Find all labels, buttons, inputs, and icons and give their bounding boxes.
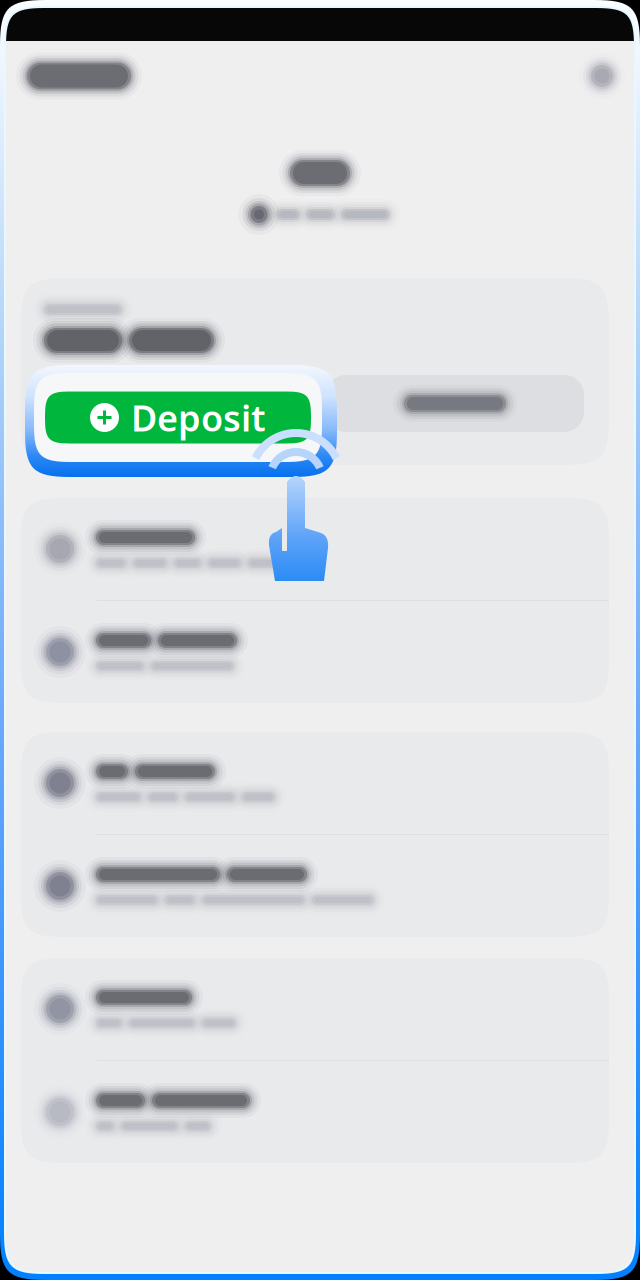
button[interactable]: Bonuses <box>21 498 609 600</box>
button[interactable]: Settings <box>21 958 609 1060</box>
staticText: Deposit <box>131 394 266 441</box>
button[interactable]: Bet history <box>21 732 609 834</box>
button[interactable]: Transaction history <box>21 835 609 937</box>
button[interactable]: Deposit <box>34 373 322 462</box>
button[interactable]: Close <box>583 57 621 95</box>
button[interactable]: 24/7 support <box>21 1061 609 1163</box>
button[interactable]: Bonus codes <box>21 601 609 703</box>
